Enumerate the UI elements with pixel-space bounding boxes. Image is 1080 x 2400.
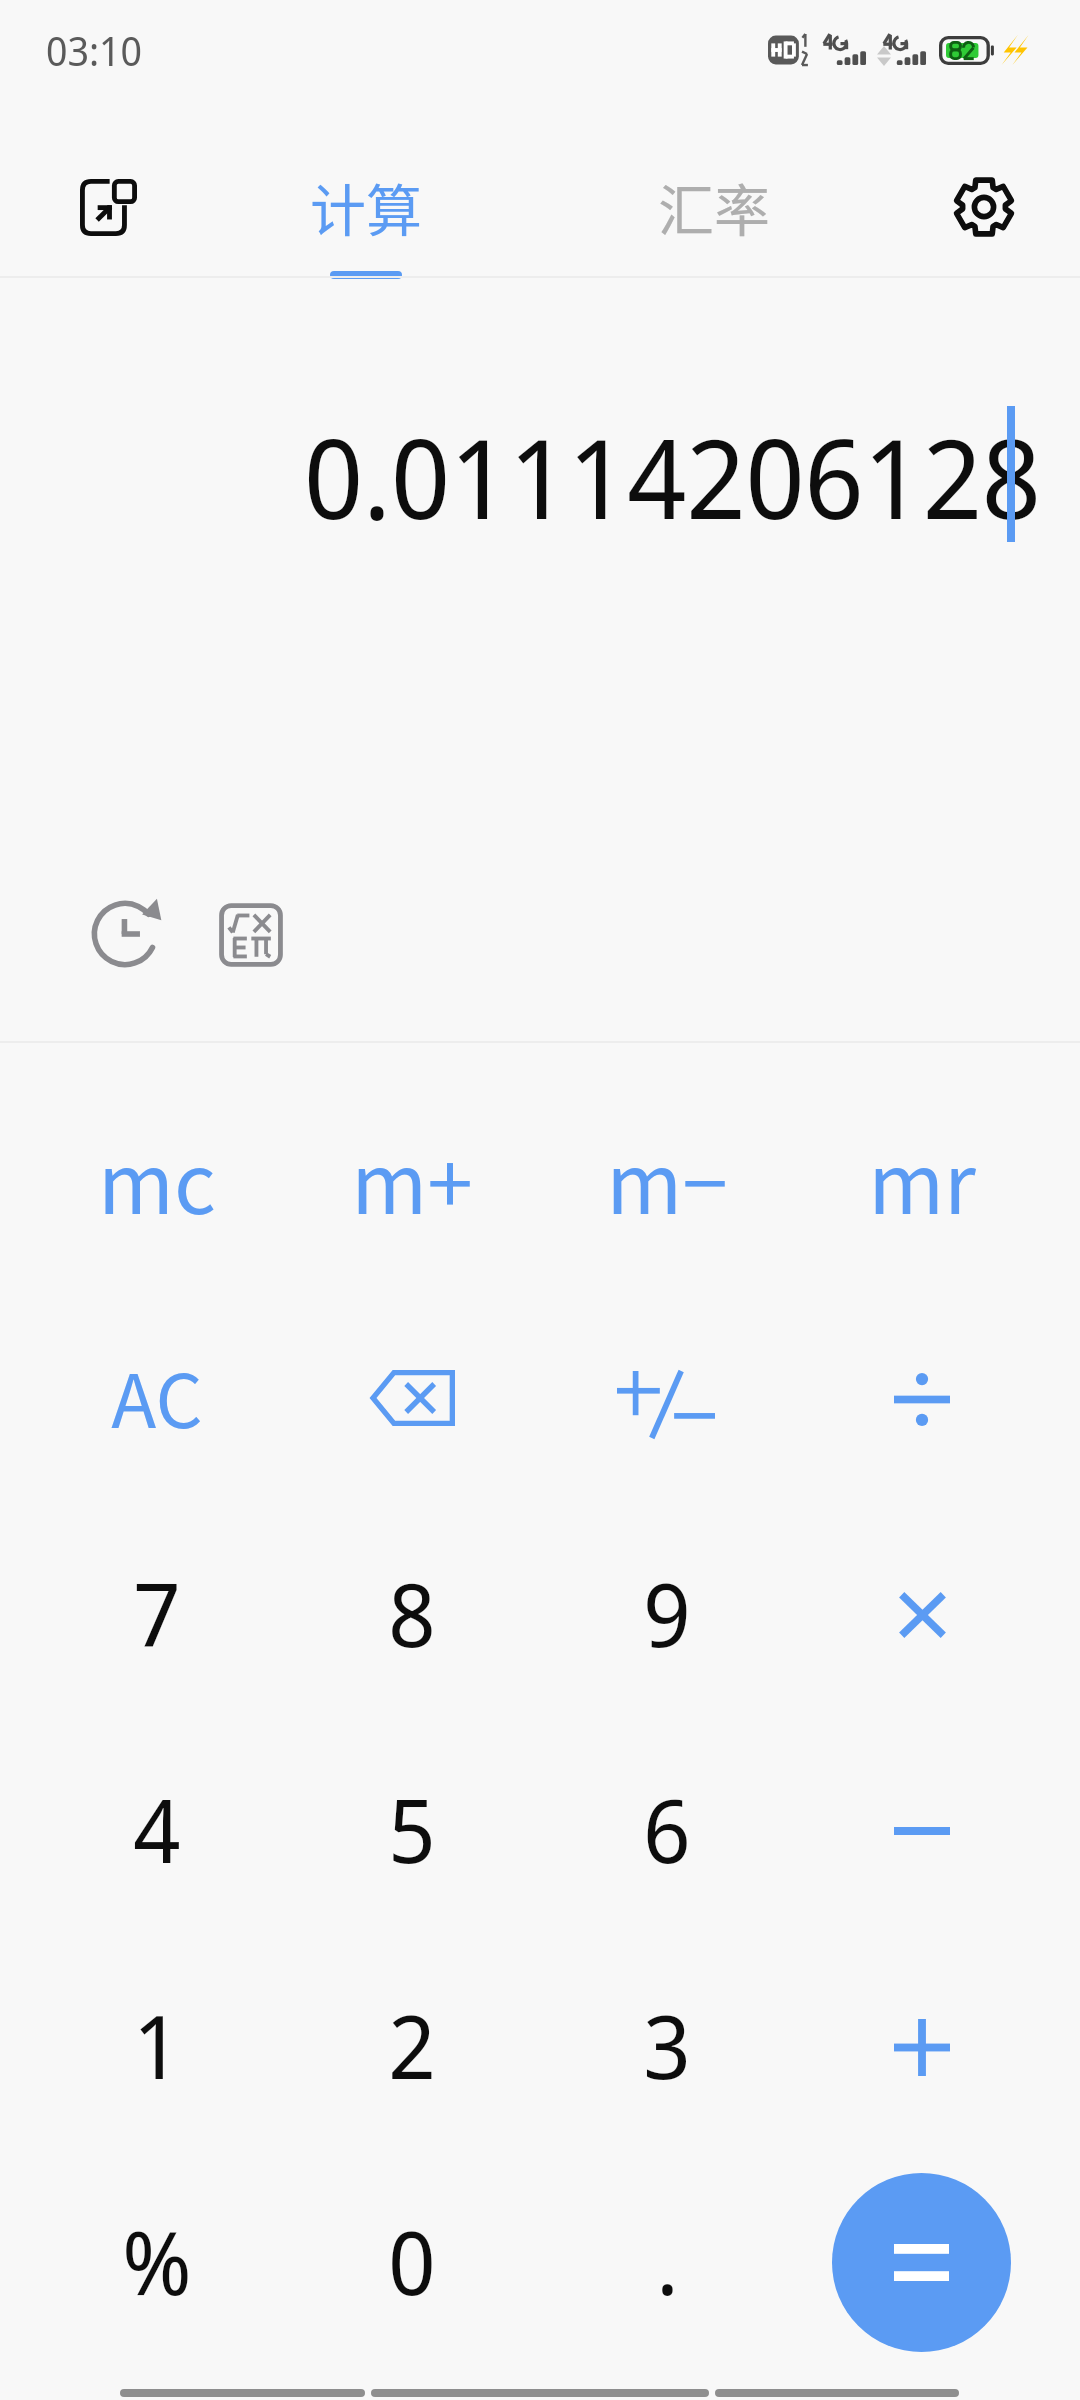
button[interactable]: % [32,2161,282,2361]
button[interactable]: Home [371,2389,709,2397]
staticText: 6 [643,1769,691,1889]
button[interactable]: Toggle sign [541,1304,791,1504]
button[interactable]: 7 [32,1513,282,1713]
button[interactable]: Back [120,2389,365,2397]
staticText: . [656,2201,679,2321]
button[interactable]: 8 [287,1513,537,1713]
button[interactable]: 计算 [256,121,476,291]
button[interactable]: m− [542,1078,792,1278]
button[interactable]: Recents [715,2389,959,2397]
staticText: 3 [643,1985,691,2105]
button[interactable]: 3 [542,1945,792,2145]
button[interactable]: Multiply [797,1515,1047,1715]
staticText: m+ [351,1119,473,1238]
staticText: 2 [388,1985,436,2105]
button[interactable]: 汇率 [604,121,824,291]
button[interactable]: Backspace [287,1298,537,1498]
button[interactable]: 9 [542,1513,792,1713]
staticText: mc [98,1119,216,1238]
button[interactable]: 6 [542,1729,792,1929]
button[interactable]: 5 [287,1729,537,1929]
staticText: 03:10 [46,23,143,77]
staticText: 汇率 [658,166,770,247]
button[interactable]: 4 [32,1729,282,1929]
staticText: 9 [643,1553,691,1673]
staticText: % [122,2201,192,2321]
staticText: 7 [133,1553,181,1673]
button[interactable]: Plus [797,1947,1047,2147]
button[interactable]: mc [32,1078,282,1278]
staticText: m− [606,1119,728,1238]
button[interactable]: Minus [797,1731,1047,1931]
staticText: 0 [388,2201,436,2321]
staticText: 8 [388,1553,436,1673]
button[interactable]: m+ [287,1078,537,1278]
button[interactable]: Floating window [62,161,154,253]
button[interactable]: History [77,886,172,981]
staticText: 1 [133,1985,181,2105]
button[interactable]: Settings [938,161,1030,253]
staticText: AC [111,1342,203,1449]
button[interactable]: AC [32,1295,282,1495]
staticText: 4 [133,1769,181,1889]
button[interactable]: Equals [832,2173,1011,2352]
button[interactable]: 1 [32,1945,282,2145]
staticText: 0.01114206128 [304,401,1041,551]
button[interactable]: Scientific mode [203,887,298,982]
staticText: 5 [388,1769,436,1889]
button[interactable]: 2 [287,1945,537,2145]
staticText: 计算 [310,166,422,247]
staticText: mr [868,1119,976,1238]
button[interactable]: Divide [797,1299,1047,1499]
button[interactable]: 0 [287,2161,537,2361]
button[interactable]: mr [797,1078,1047,1278]
button[interactable]: . [542,2161,792,2361]
